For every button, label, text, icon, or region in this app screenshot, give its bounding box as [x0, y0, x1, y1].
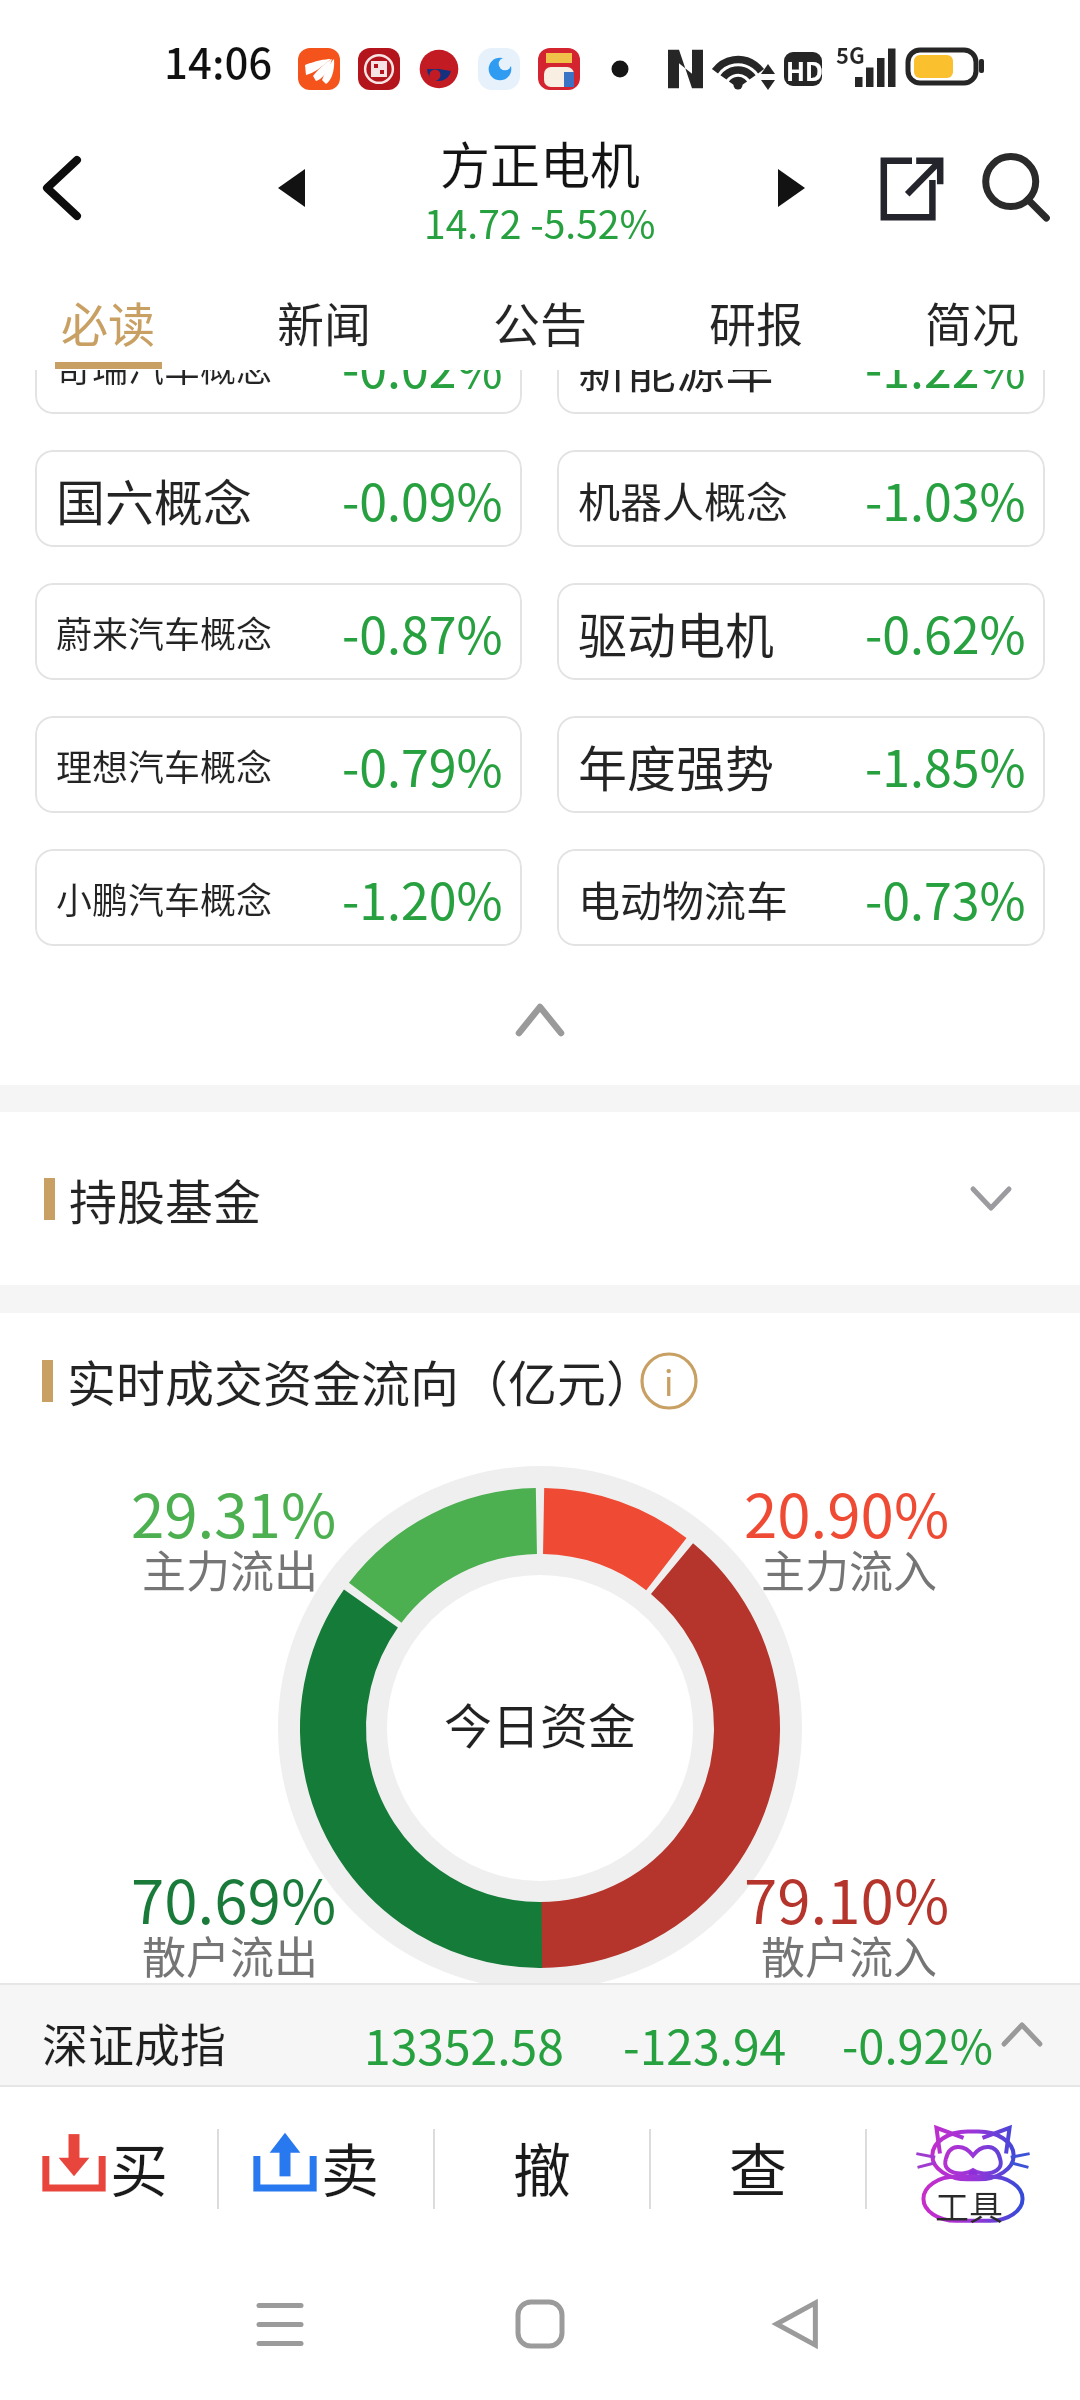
button[interactable]: 新闻: [216, 270, 432, 370]
button[interactable]: 蔚来汽车概念: [35, 583, 522, 680]
button[interactable]: Back: [716, 2274, 876, 2374]
button[interactable]: 研报: [648, 270, 864, 370]
staticText: 公告: [493, 287, 587, 355]
staticText: -1.85%: [865, 729, 1026, 801]
staticText: 散户流入: [761, 1923, 937, 1987]
button[interactable]: Previous stock: [241, 130, 341, 246]
staticText: 新能源车: [578, 331, 775, 402]
staticText: i: [664, 1357, 674, 1406]
button[interactable]: 撤: [434, 2125, 650, 2197]
staticText: -0.09%: [342, 463, 503, 535]
staticText: 必读: [61, 287, 155, 355]
staticText: 14:06: [164, 30, 273, 91]
staticText: -0.62%: [865, 596, 1026, 668]
staticText: 方正电机: [440, 126, 640, 198]
staticText: 新闻: [277, 287, 371, 355]
staticText: 蔚来汽车概念: [56, 606, 273, 658]
button[interactable]: 卖: [253, 2125, 380, 2197]
button[interactable]: Share: [862, 137, 962, 239]
staticText: -1.22%: [865, 330, 1026, 402]
staticText: 5G: [836, 38, 865, 70]
button[interactable]: 简况: [864, 270, 1080, 370]
staticText: -123.94: [623, 2009, 787, 2079]
button[interactable]: 公告: [432, 270, 648, 370]
button[interactable]: 国六概念: [35, 450, 522, 547]
staticText: 奇瑞汽车概念: [56, 340, 273, 392]
staticText: 70.69%: [131, 1854, 337, 1941]
button[interactable]: Back: [10, 122, 114, 254]
staticText: 散户流出: [142, 1923, 318, 1987]
staticText: 简况: [925, 287, 1019, 355]
staticText: 年度强势: [578, 730, 775, 801]
staticText: 29.31%: [131, 1468, 337, 1555]
staticText: 小鹏汽车概念: [56, 872, 273, 924]
staticText: 理想汽车概念: [56, 739, 273, 791]
staticText: -0.87%: [342, 596, 503, 668]
button[interactable]: 工具: [866, 2117, 1080, 2227]
staticText: 持股基金: [69, 1164, 262, 1234]
button[interactable]: Info: [640, 1352, 698, 1410]
staticText: -1.20%: [342, 862, 503, 934]
button[interactable]: Search: [964, 137, 1068, 239]
staticText: -0.73%: [865, 862, 1026, 934]
staticText: 研报: [709, 287, 803, 355]
staticText: -0.92%: [842, 2009, 993, 2077]
staticText: 深证成指: [42, 2009, 226, 2076]
staticText: 实时成交资金流向（亿元）: [67, 1345, 656, 1416]
staticText: 13352.58: [364, 2009, 564, 2079]
staticText: 今日资金: [444, 1688, 637, 1758]
button[interactable]: 深证成指: [0, 1983, 1080, 2087]
staticText: -1.03%: [865, 463, 1026, 535]
staticText: 79.10%: [744, 1854, 950, 1941]
button[interactable]: 奇瑞汽车概念: [35, 317, 522, 414]
staticText: 主力流出: [142, 1537, 318, 1601]
staticText: 撤: [513, 2125, 572, 2197]
staticText: 20.90%: [744, 1468, 950, 1555]
button[interactable]: Collapse: [0, 985, 1080, 1055]
button[interactable]: 机器人概念: [557, 450, 1045, 547]
staticText: HD: [786, 52, 823, 88]
staticText: 主力流入: [761, 1537, 937, 1601]
staticText: 国六概念: [56, 464, 253, 535]
staticText: 电动物流车: [578, 868, 789, 929]
button[interactable]: Recent apps: [200, 2274, 360, 2374]
button[interactable]: 小鹏汽车概念: [35, 849, 522, 946]
staticText: 查: [729, 2125, 788, 2197]
button[interactable]: 年度强势: [557, 716, 1045, 813]
button[interactable]: 理想汽车概念: [35, 716, 522, 813]
staticText: 卖: [321, 2125, 380, 2197]
button[interactable]: 持股基金: [0, 1112, 1080, 1285]
staticText: 14.72 -5.52%: [424, 194, 656, 250]
button[interactable]: 电动物流车: [557, 849, 1045, 946]
staticText: -0.79%: [342, 729, 503, 801]
button[interactable]: 驱动电机: [557, 583, 1045, 680]
button[interactable]: 必读: [0, 270, 216, 370]
button[interactable]: 查: [650, 2125, 866, 2197]
staticText: -0.02%: [342, 330, 503, 402]
staticText: 买: [110, 2125, 169, 2197]
button[interactable]: 买: [42, 2125, 169, 2197]
button[interactable]: Home: [460, 2274, 620, 2374]
staticText: 驱动电机: [578, 597, 775, 668]
button[interactable]: Next stock: [741, 130, 841, 246]
button[interactable]: 新能源车: [557, 317, 1045, 414]
staticText: 机器人概念: [578, 469, 789, 530]
staticText: 工具: [935, 2181, 1003, 2230]
